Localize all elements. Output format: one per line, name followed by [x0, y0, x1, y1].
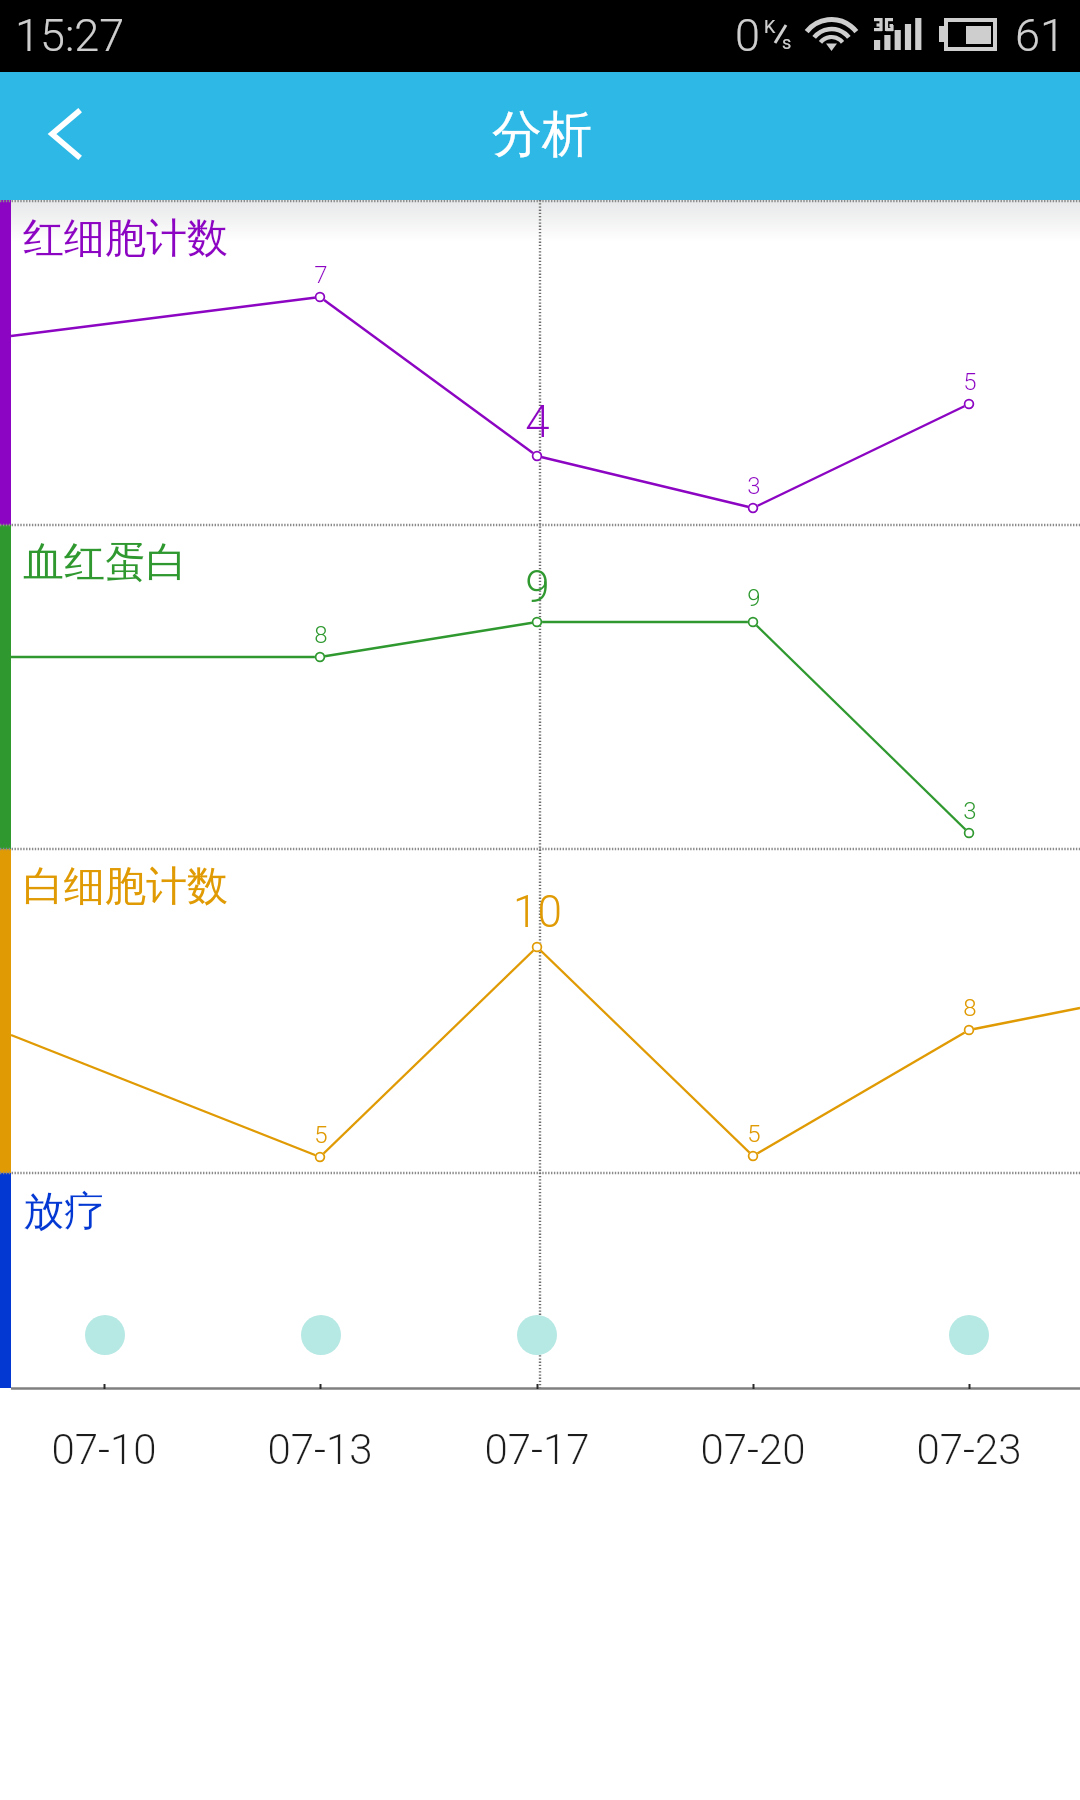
staticText: 3: [963, 797, 977, 825]
button[interactable]: 红细胞计数: [0, 200, 1080, 525]
staticText: 7: [314, 261, 328, 289]
staticText: 8: [963, 994, 977, 1022]
staticText: 5: [747, 1120, 761, 1148]
staticText: 放疗: [23, 1186, 105, 1238]
staticText: 分析: [492, 103, 592, 166]
staticText: 血红蛋白: [23, 537, 187, 589]
button[interactable]: 放疗: [0, 1173, 1080, 1388]
staticText: 9: [525, 561, 550, 613]
staticText: 10: [513, 886, 562, 938]
button[interactable]: 血红蛋白: [0, 525, 1080, 849]
staticText: 07-13: [267, 1425, 373, 1474]
staticText: 4: [525, 396, 550, 448]
staticText: K: [764, 16, 776, 37]
staticText: 61: [1015, 9, 1065, 62]
staticText: 07-17: [484, 1425, 590, 1474]
staticText: 5: [314, 1121, 328, 1149]
staticText: 15:27: [15, 9, 125, 62]
button[interactable]: Back: [0, 72, 130, 200]
staticText: 07-10: [51, 1425, 157, 1474]
staticText: 9: [747, 584, 761, 612]
staticText: s: [782, 32, 792, 53]
button[interactable]: 白细胞计数: [0, 849, 1080, 1173]
staticText: 07-20: [700, 1425, 806, 1474]
staticText: 0: [735, 9, 760, 62]
staticText: 5: [963, 368, 977, 396]
staticText: 3: [747, 472, 761, 500]
staticText: 07-23: [916, 1425, 1022, 1474]
staticText: 8: [314, 621, 328, 649]
staticText: 红细胞计数: [23, 213, 228, 265]
staticText: 白细胞计数: [23, 861, 228, 913]
